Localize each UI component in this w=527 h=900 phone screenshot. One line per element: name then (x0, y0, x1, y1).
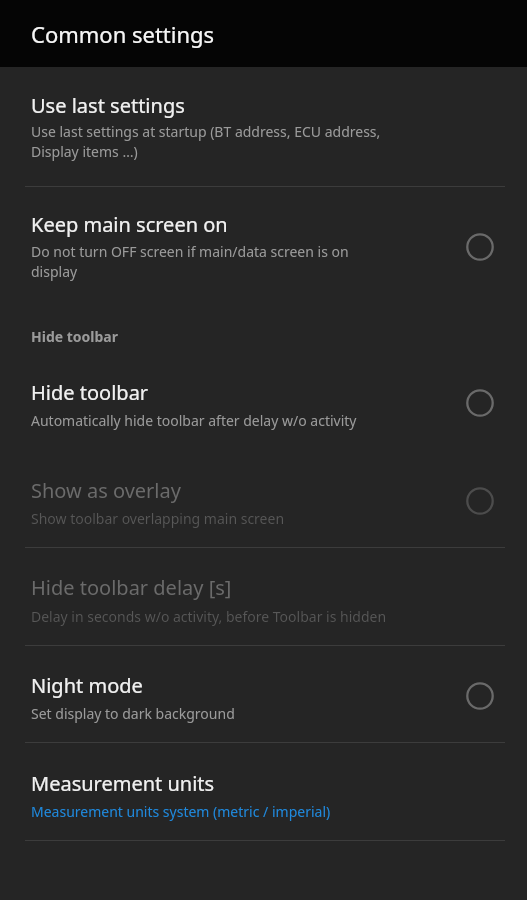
button[interactable] (0, 187, 527, 310)
staticText: Night mode (31, 672, 143, 699)
staticText: Delay in seconds w/o activity, before To… (31, 607, 387, 626)
staticText: Set display to dark background (31, 704, 235, 723)
staticText: Automatically hide toolbar after delay w… (31, 411, 357, 430)
button[interactable]: Night mode (453, 669, 507, 723)
staticText: Hide toolbar delay [s] (31, 574, 232, 601)
staticText: Use last settings at startup (BT address… (31, 122, 381, 162)
button[interactable] (0, 646, 527, 742)
staticText: Show as overlay (31, 477, 181, 504)
staticText: Hide toolbar (31, 379, 149, 406)
button[interactable]: Hide toolbar (453, 376, 507, 430)
button[interactable] (0, 68, 527, 186)
staticText: Show toolbar overlapping main screen (31, 509, 285, 528)
button[interactable] (0, 743, 527, 840)
staticText: Common settings (31, 19, 215, 49)
button[interactable] (0, 456, 527, 547)
staticText: Measurement units (31, 770, 215, 797)
button[interactable] (0, 548, 527, 645)
staticText: Measurement units system (metric / imper… (31, 802, 331, 821)
staticText: Keep main screen on (31, 211, 228, 238)
staticText: Use last settings (31, 92, 185, 119)
button[interactable] (0, 358, 527, 455)
staticText: Hide toolbar (31, 327, 118, 346)
staticText: Do not turn OFF screen if main/data scre… (31, 242, 349, 282)
button[interactable]: Show as overlay (453, 474, 507, 528)
button[interactable]: Keep main screen on (453, 220, 507, 274)
